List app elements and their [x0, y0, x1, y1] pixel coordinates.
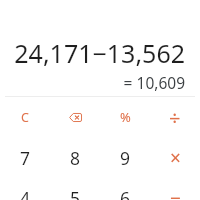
staticText: 4 — [20, 186, 31, 200]
button[interactable]: − — [150, 178, 200, 200]
button[interactable]: C — [0, 97, 50, 137]
staticText: 8 — [70, 146, 81, 170]
button[interactable]: 6 — [100, 178, 150, 200]
staticText: C — [21, 109, 29, 126]
staticText: = 10,609 — [8, 72, 185, 93]
staticText: 9 — [120, 146, 131, 170]
button[interactable]: 5 — [50, 178, 100, 200]
button[interactable]: 7 — [0, 138, 50, 178]
button[interactable]: 9 — [100, 138, 150, 178]
button[interactable]: 8 — [50, 138, 100, 178]
staticText: 6 — [120, 186, 131, 200]
button[interactable]: 4 — [0, 178, 50, 200]
staticText: ÷ — [169, 104, 181, 131]
button[interactable]: Backspace — [50, 97, 100, 137]
button[interactable]: ÷ — [150, 97, 200, 137]
staticText: 24,171−13,562 — [8, 36, 185, 70]
staticText: × — [170, 145, 181, 171]
staticText: 7 — [20, 146, 31, 170]
staticText: − — [170, 185, 181, 200]
button[interactable]: × — [150, 138, 200, 178]
staticText: % — [120, 108, 131, 126]
button[interactable]: % — [100, 97, 150, 137]
staticText: 5 — [70, 186, 81, 200]
